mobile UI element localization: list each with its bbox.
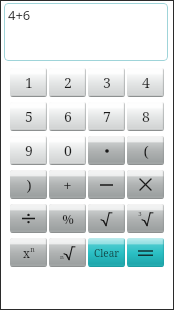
staticText: % [62,210,74,228]
staticText: + [63,175,72,195]
staticText: 7 [103,107,111,126]
button[interactable]: 4 [127,68,164,97]
button[interactable]: Clear [88,238,125,267]
button[interactable]: + [49,170,86,199]
staticText: 9 [25,141,33,160]
button[interactable]: ( [127,136,164,165]
staticText: 0 [64,141,72,160]
button[interactable]: 7 [88,102,125,131]
button[interactable]: Minus [88,170,125,199]
button[interactable]: Power [10,238,47,267]
staticText: ( [143,141,149,161]
staticText: 4+6 [8,6,31,24]
button[interactable]: % [49,204,86,233]
button[interactable]: ) [10,170,47,199]
button[interactable]: 4+6 [4,3,168,61]
button[interactable]: Cube root [127,204,164,233]
button[interactable]: 3 [88,68,125,97]
staticText: x [23,245,30,261]
staticText: 8 [142,107,150,126]
button[interactable]: 6 [49,102,86,131]
button[interactable]: 2 [49,68,86,97]
staticText: n [60,253,64,261]
button[interactable]: Decimal point [88,136,125,165]
staticText: 3 [138,210,142,218]
button[interactable]: 9 [10,136,47,165]
staticText: 2 [64,73,72,92]
staticText: ) [26,175,32,195]
staticText: 3 [103,73,111,92]
button[interactable]: Divide [10,204,47,233]
button[interactable]: 1 [10,68,47,97]
staticText: 4 [142,73,150,92]
staticText: 1 [25,73,33,92]
staticText: Clear [94,246,119,260]
button[interactable]: Equals [127,238,164,267]
button[interactable]: 5 [10,102,47,131]
button[interactable]: Multiply [127,170,164,199]
button[interactable]: 8 [127,102,164,131]
staticText: 5 [25,107,33,126]
button[interactable]: Square root [88,204,125,233]
button[interactable]: Nth root [49,238,86,267]
staticText: 6 [64,107,72,126]
button[interactable]: 0 [49,136,86,165]
staticText: n [30,245,35,255]
